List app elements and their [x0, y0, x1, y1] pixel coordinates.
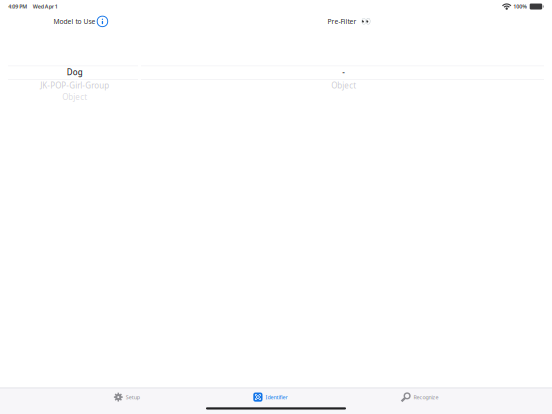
button[interactable]: Identifier: [246, 389, 294, 405]
staticText: 👀: [361, 17, 371, 26]
staticText: Pre-Filter: [328, 17, 357, 26]
staticText: Model to Use: [53, 17, 95, 26]
staticText: Recognize: [414, 394, 439, 401]
button[interactable]: Model to Use: [53, 15, 108, 27]
button[interactable]: Pre-Filter: [328, 15, 371, 27]
staticText: Setup: [126, 394, 140, 401]
button[interactable]: Setup: [107, 390, 147, 404]
staticText: 100%: [513, 3, 527, 10]
staticText: Dog: [67, 67, 83, 77]
staticText: Wed Apr 1: [33, 3, 58, 10]
staticText: Object: [62, 92, 87, 102]
staticText: JK-POP-Girl-Group: [40, 80, 109, 91]
staticText: -: [342, 67, 345, 77]
staticText: Object: [331, 80, 356, 91]
button[interactable]: Recognize: [394, 389, 446, 405]
staticText: 4:09 PM: [8, 3, 27, 10]
staticText: Identifier: [265, 394, 287, 401]
